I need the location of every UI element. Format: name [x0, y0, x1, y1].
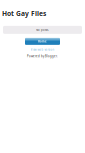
staticText: View web version	[30, 48, 54, 51]
staticText: Hot Gay Files	[2, 9, 46, 18]
staticText: No posts.	[36, 28, 49, 32]
button[interactable]: Powered by Blogger.	[27, 54, 58, 58]
staticText: Home	[38, 40, 47, 43]
button[interactable]: View web version	[30, 48, 54, 51]
staticText: Powered by Blogger.	[27, 54, 58, 58]
button[interactable]: Home	[25, 38, 60, 45]
